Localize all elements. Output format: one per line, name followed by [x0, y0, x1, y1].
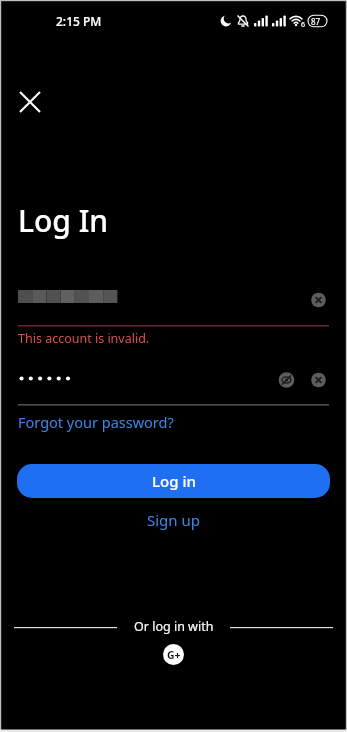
staticText: Forgot your password?: [18, 412, 174, 432]
staticText: 87: [311, 16, 321, 27]
button[interactable]: [10, 82, 50, 122]
button[interactable]: Forgot your password?: [14, 410, 170, 430]
button[interactable]: G+: [163, 644, 184, 665]
staticText: Or log in with: [134, 618, 214, 635]
staticText: Sign up: [147, 510, 200, 530]
button[interactable]: [0, 282, 347, 318]
staticText: 6: [301, 20, 306, 30]
staticText: 2:15 PM: [56, 13, 102, 29]
staticText: This account is invalid.: [18, 330, 150, 347]
button[interactable]: [0, 362, 347, 398]
button[interactable]: Sign up: [0, 507, 347, 533]
staticText: Log in: [152, 471, 196, 491]
staticText: G+: [167, 648, 181, 662]
button[interactable]: Log in: [17, 464, 330, 498]
staticText: Log In: [18, 200, 109, 241]
